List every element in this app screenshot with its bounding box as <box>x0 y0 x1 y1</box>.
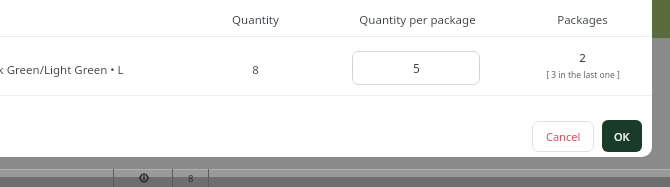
button[interactable]: 8 <box>173 169 208 187</box>
staticText: [ 3 in the last one ] <box>546 69 620 81</box>
staticText: OK <box>614 129 630 144</box>
button[interactable]: Navigate <box>130 169 158 187</box>
staticText: Packages <box>557 12 608 28</box>
staticText: Dark Green/Light Green • L <box>0 62 124 78</box>
button[interactable]: Cancel <box>532 121 594 152</box>
button[interactable]: OK <box>602 120 642 152</box>
staticText: Quantity per package <box>359 12 476 28</box>
button[interactable]: Dark Green/Light Green • L <box>0 59 188 81</box>
staticText: 2 <box>579 50 586 66</box>
staticText: 8 <box>252 62 259 78</box>
button[interactable]: 5 <box>352 51 480 85</box>
staticText: 8 <box>188 172 194 185</box>
staticText: Cancel <box>546 129 581 144</box>
staticText: 5 <box>413 60 420 76</box>
staticText: Quantity <box>232 12 279 28</box>
